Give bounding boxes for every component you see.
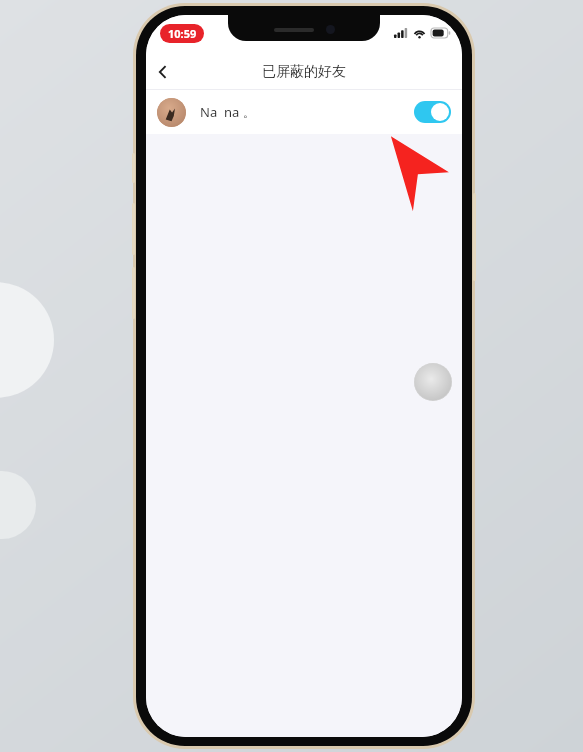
staticText: 已屏蔽的好友 bbox=[262, 63, 346, 81]
button[interactable]: Assistive touch bbox=[414, 363, 452, 401]
button[interactable]: Back bbox=[146, 55, 180, 89]
staticText: Na na 。 bbox=[200, 103, 256, 121]
button[interactable]: Blocked toggle bbox=[414, 101, 451, 123]
staticText: 10:59 bbox=[168, 26, 197, 41]
button[interactable]: Na na 。 bbox=[146, 90, 462, 134]
